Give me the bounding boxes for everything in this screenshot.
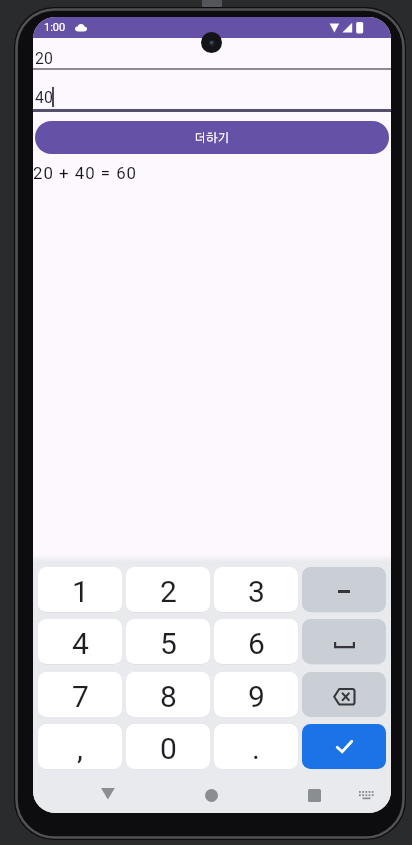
button[interactable]: 7: [38, 672, 122, 717]
button[interactable]: [349, 783, 384, 807]
button[interactable]: 0: [126, 724, 210, 769]
button[interactable]: 2: [126, 567, 210, 612]
staticText: 9: [248, 679, 265, 714]
staticText: 40: [35, 88, 53, 107]
button[interactable]: .: [214, 724, 298, 769]
button[interactable]: [302, 724, 386, 769]
staticText: 더하기: [194, 132, 230, 144]
button[interactable]: [302, 567, 386, 612]
button[interactable]: [33, 72, 391, 111]
staticText: 1:00: [44, 21, 66, 34]
button[interactable]: [300, 782, 328, 809]
staticText: .: [252, 731, 260, 766]
button[interactable]: 9: [214, 672, 298, 717]
staticText: ,: [77, 731, 83, 766]
button[interactable]: ,: [38, 724, 122, 769]
button[interactable]: 5: [126, 619, 210, 664]
staticText: 20: [35, 49, 53, 68]
staticText: 1: [72, 574, 89, 609]
button[interactable]: 4: [38, 619, 122, 664]
button[interactable]: 1: [38, 567, 122, 612]
staticText: 6: [248, 626, 265, 661]
button[interactable]: [33, 38, 391, 70]
button[interactable]: 8: [126, 672, 210, 717]
staticText: 7: [72, 679, 89, 714]
staticText: 4: [72, 626, 89, 661]
button[interactable]: [302, 619, 386, 664]
button[interactable]: 3: [214, 567, 298, 612]
staticText: 3: [248, 574, 265, 609]
staticText: 2: [160, 574, 177, 609]
staticText: 0: [160, 731, 177, 766]
button[interactable]: [197, 782, 225, 809]
staticText: 8: [160, 679, 177, 714]
button[interactable]: 6: [214, 619, 298, 664]
staticText: 5: [160, 626, 177, 661]
button[interactable]: [302, 672, 386, 717]
button[interactable]: 더하기: [35, 121, 389, 154]
button[interactable]: [94, 781, 122, 807]
staticText: 20 + 40 = 60: [33, 163, 138, 183]
